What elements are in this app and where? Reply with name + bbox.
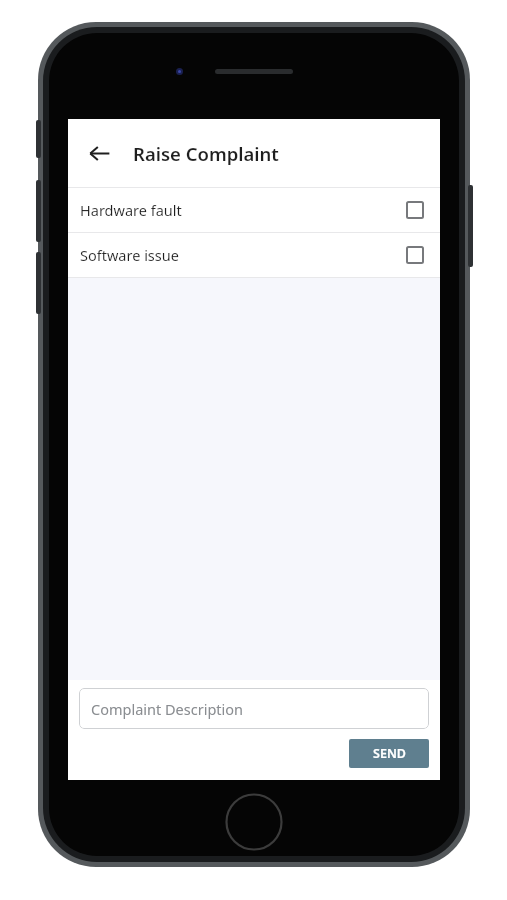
- button[interactable]: Complaint Description: [79, 688, 429, 729]
- staticText: Software issue: [80, 245, 179, 265]
- button[interactable]: Hardware fault: [68, 188, 440, 232]
- staticText: Hardware fault: [80, 200, 182, 220]
- staticText: Complaint Description: [91, 699, 244, 719]
- button[interactable]: Software issue: [68, 233, 440, 277]
- staticText: Raise Complaint: [133, 141, 279, 166]
- staticText: SEND: [373, 745, 406, 762]
- button[interactable]: Back: [78, 132, 120, 174]
- button[interactable]: SEND: [349, 739, 429, 768]
